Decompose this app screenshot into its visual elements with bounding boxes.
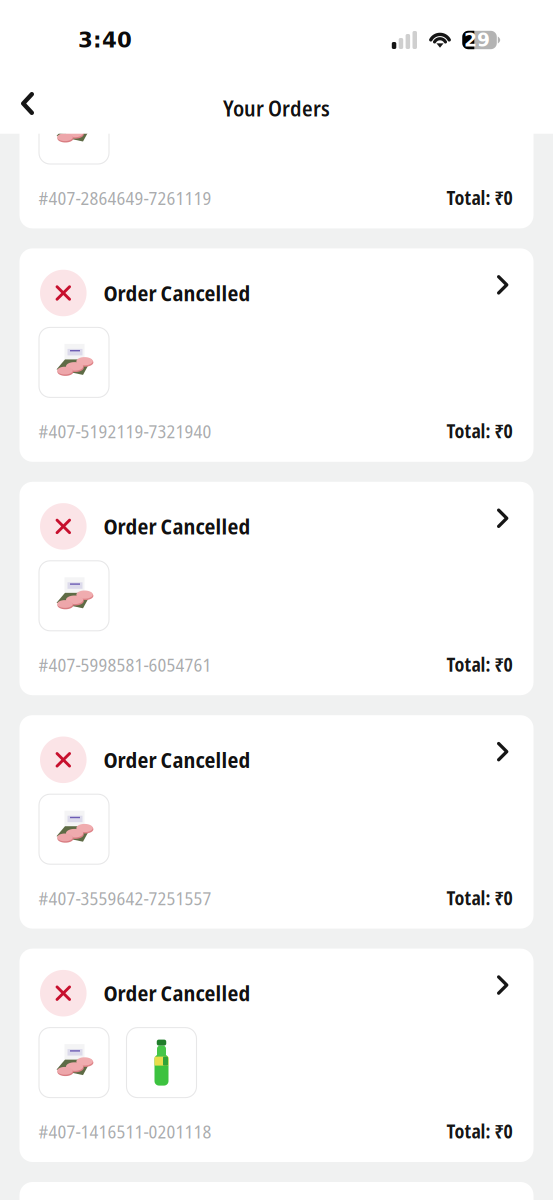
button[interactable]: Order Cancelled [19, 15, 533, 228]
staticText: Total: ₹0 [446, 418, 512, 444]
staticText: Order Cancelled [103, 278, 250, 307]
button[interactable]: Back [5, 81, 49, 125]
staticText: Order Cancelled [103, 978, 250, 1008]
staticText: #407-1416511-0201118 [38, 1119, 211, 1144]
button[interactable]: Order Cancelled [19, 715, 533, 929]
staticText: Total: ₹0 [446, 652, 512, 677]
button[interactable]: Order Cancelled [19, 949, 533, 1162]
staticText: Total: ₹0 [446, 185, 512, 210]
staticText: #407-3559642-7251557 [38, 885, 211, 911]
staticText: Total: ₹0 [446, 1119, 512, 1144]
staticText: Total: ₹0 [446, 885, 512, 911]
button[interactable]: Order Cancelled [19, 482, 533, 695]
staticText: #407-2864649-7261119 [38, 185, 211, 210]
staticText: #407-5192119-7321940 [38, 418, 211, 444]
staticText: Order Cancelled [103, 745, 250, 774]
staticText: Order Cancelled [103, 44, 250, 74]
button[interactable]: Order Cancelled [19, 248, 533, 462]
staticText: #407-5998581-6054761 [38, 652, 211, 677]
staticText: Order Cancelled [103, 511, 250, 541]
staticText: 3:40 [78, 28, 132, 52]
staticText: Your Orders [223, 93, 330, 123]
staticText: 29 [464, 29, 490, 51]
